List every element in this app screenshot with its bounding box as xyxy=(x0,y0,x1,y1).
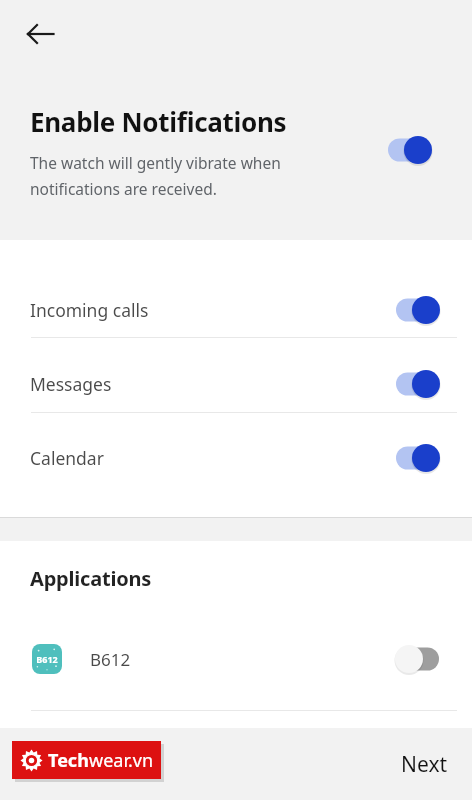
button[interactable]: Messages xyxy=(0,357,472,411)
staticText: B612 xyxy=(90,648,131,671)
button[interactable]: Enable notifications toggle xyxy=(380,128,452,172)
button[interactable]: Calendar xyxy=(0,431,472,485)
staticText: Messages xyxy=(30,372,112,396)
button[interactable]: Back xyxy=(14,8,66,60)
staticText: Enable Notifications xyxy=(30,104,287,139)
staticText: The watch will gently vibrate when notif… xyxy=(30,152,281,200)
button[interactable]: Incoming calls xyxy=(0,283,472,337)
button[interactable]: Next xyxy=(391,742,458,787)
staticText: Next xyxy=(401,750,448,779)
staticText: Incoming calls xyxy=(30,298,149,322)
staticText: wear.vn xyxy=(89,748,154,773)
staticText: B612 xyxy=(36,653,58,665)
staticText: Applications xyxy=(30,565,152,592)
staticText: Calendar xyxy=(30,446,104,470)
staticText: Tech xyxy=(48,748,89,773)
button[interactable]: B612 xyxy=(0,630,472,688)
